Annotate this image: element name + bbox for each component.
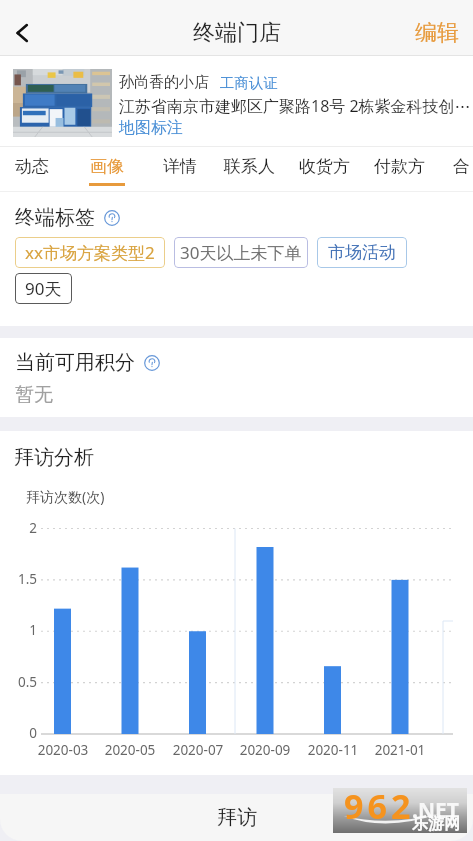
staticText: 90天 (25, 277, 62, 300)
staticText: 乐游网 (412, 814, 460, 834)
staticText: 2020-07 (168, 741, 228, 759)
staticText: 终端门店 (193, 19, 281, 47)
button[interactable]: 地图标注 (119, 118, 183, 138)
staticText: 拜访分析 (14, 445, 94, 470)
staticText: 付款方 (374, 156, 425, 177)
staticText: 拜访 (217, 805, 257, 830)
staticText: 联系人 (224, 156, 275, 177)
staticText: 0 (9, 724, 37, 742)
staticText: .NET (412, 796, 459, 825)
staticText: 江苏省南京市建邺区广聚路18号 2栋紫金科技创新大厦 (119, 95, 471, 117)
button[interactable]: 拜访 (0, 794, 473, 841)
button[interactable]: 画像 (73, 147, 141, 192)
staticText: 1 (9, 621, 37, 639)
button[interactable]: 90天 (15, 273, 72, 304)
button[interactable]: 30天以上未下单 (174, 237, 308, 268)
staticText: 962 (344, 783, 415, 828)
button[interactable]: 合 (427, 147, 473, 192)
button[interactable]: 详情 (146, 147, 214, 192)
button[interactable]: 编辑 (401, 9, 473, 57)
button[interactable]: xx市场方案类型2 (15, 237, 165, 268)
staticText: 30天以上未下单 (180, 241, 302, 264)
staticText: 2020-03 (33, 741, 93, 759)
button[interactable]: 孙尚香的小店 (0, 56, 473, 147)
staticText: 暂无 (15, 383, 53, 407)
staticText: 拜访次数(次) (26, 487, 105, 506)
staticText: 孙尚香的小店 (119, 73, 209, 92)
staticText: 当前可用积分 (15, 350, 135, 375)
staticText: 2021-01 (370, 741, 430, 759)
button[interactable]: 工商认证 (220, 74, 278, 92)
button[interactable]: 动态 (0, 147, 66, 192)
staticText: 2020-09 (235, 741, 295, 759)
staticText: 详情 (163, 156, 197, 177)
staticText: 终端标签 (15, 205, 95, 230)
staticText: 0.5 (9, 673, 37, 691)
button[interactable]: 市场活动 (317, 237, 407, 268)
staticText: 市场活动 (328, 242, 396, 263)
button[interactable]: 收货方 (290, 147, 358, 192)
button[interactable]: Back (0, 11, 44, 55)
button[interactable]: 联系人 (215, 147, 283, 192)
staticText: 1.5 (9, 570, 37, 588)
staticText: 合 (453, 156, 470, 177)
staticText: 2 (9, 519, 37, 537)
staticText: 画像 (90, 156, 124, 177)
staticText: 收货方 (299, 156, 350, 177)
staticText: 编辑 (415, 19, 459, 47)
button[interactable]: 付款方 (365, 147, 433, 192)
staticText: 2020-05 (100, 741, 160, 759)
staticText: xx市场方案类型2 (25, 241, 155, 264)
staticText: 动态 (15, 156, 49, 177)
staticText: 2020-11 (303, 741, 363, 759)
